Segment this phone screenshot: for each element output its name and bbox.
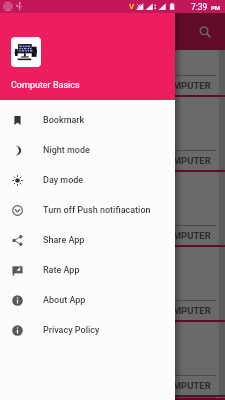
staticText: PM bbox=[211, 4, 221, 11]
staticText: Night mode bbox=[43, 145, 90, 156]
button[interactable]: About App bbox=[0, 285, 175, 315]
button[interactable]: Day mode bbox=[0, 165, 175, 195]
staticText: Bookmark bbox=[43, 115, 85, 126]
button[interactable]: COMPUTER bbox=[6, 322, 219, 395]
staticText: 7:39 bbox=[191, 2, 208, 12]
staticText: COMPUTER bbox=[160, 305, 211, 316]
button[interactable]: COMPUTER bbox=[6, 97, 219, 170]
button[interactable]: COMPUTER bbox=[6, 172, 219, 245]
button[interactable]: Bookmark bbox=[0, 105, 175, 135]
button[interactable]: Rate App bbox=[0, 255, 175, 285]
button[interactable]: COMPUTER bbox=[6, 397, 219, 398]
staticText: COMPUTER bbox=[160, 155, 211, 166]
staticText: Rate App bbox=[43, 265, 80, 276]
button[interactable]: Turn off Push notifiacation bbox=[0, 195, 175, 225]
staticText: About App bbox=[43, 295, 86, 306]
button[interactable]: Share App bbox=[0, 225, 175, 255]
staticText: COMPUTER bbox=[160, 230, 211, 241]
staticText: Turn off Push notifiacation bbox=[43, 205, 151, 216]
button[interactable]: COMPUTER bbox=[6, 50, 219, 95]
staticText: Day mode bbox=[43, 175, 84, 186]
staticText: Privacy Policy bbox=[43, 325, 100, 336]
staticText: COMPUTER bbox=[160, 380, 211, 391]
button[interactable]: Privacy Policy bbox=[0, 315, 175, 345]
button[interactable]: Search bbox=[193, 20, 217, 44]
button[interactable]: COMPUTER bbox=[6, 247, 219, 320]
staticText: Share App bbox=[43, 235, 85, 246]
staticText: V bbox=[129, 2, 135, 11]
staticText: Computer Basics bbox=[11, 80, 80, 91]
staticText: COMPUTER bbox=[160, 80, 211, 91]
button[interactable]: Night mode bbox=[0, 135, 175, 165]
